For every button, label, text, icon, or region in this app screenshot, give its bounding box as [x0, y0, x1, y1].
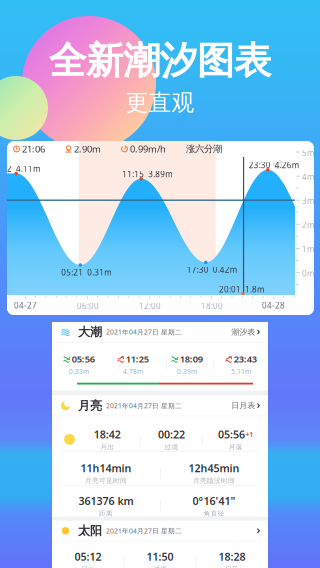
staticText: 角直径: [203, 509, 224, 518]
staticText: 04-28: [262, 300, 285, 311]
staticText: 0m: [302, 268, 314, 279]
staticText: 18:00: [201, 300, 223, 311]
staticText: 月亮可见时间: [85, 477, 127, 485]
staticText: 0.00: [297, 300, 314, 311]
staticText: 20:01 1.8m: [219, 284, 264, 295]
staticText: 12:00: [139, 300, 161, 311]
staticText: 过境: [164, 443, 178, 451]
staticText: 日出: [81, 565, 95, 568]
button[interactable]: 大潮: [52, 322, 268, 342]
staticText: 361376 km: [78, 494, 133, 508]
staticText: 过境: [153, 565, 167, 568]
staticText: 5m: [302, 147, 314, 158]
staticText: 距离: [99, 509, 113, 518]
staticText: 1m: [302, 244, 314, 254]
staticText: 17:30 0.42m: [187, 264, 237, 275]
staticText: 0°16'41": [192, 494, 235, 508]
staticText: 太阳: [70, 523, 102, 538]
staticText: 2021年04月27日 星期二: [102, 401, 182, 410]
staticText: 04-27: [14, 300, 37, 311]
staticText: 05:21 0.31m: [61, 267, 111, 278]
staticText: 更直观: [125, 89, 194, 117]
staticText: 23:30 4.26m: [249, 160, 299, 170]
staticText: 2m: [302, 220, 314, 230]
staticText: 3m: [302, 196, 314, 206]
staticText: 涨六分潮: [186, 143, 222, 155]
staticText: 11:15 3.89m: [122, 169, 172, 179]
staticText: 0.99m/h: [128, 143, 166, 155]
staticText: 05:56: [72, 353, 95, 365]
staticText: 0.33m: [69, 367, 89, 376]
staticText: 12h45min: [188, 461, 239, 475]
staticText: 06:00: [77, 300, 99, 311]
staticText: 4.78m: [123, 367, 143, 376]
staticText: +1: [246, 430, 254, 439]
staticText: 月出: [100, 443, 114, 451]
staticText: 日月表: [231, 401, 255, 411]
staticText: 11:50: [146, 549, 173, 564]
staticText: 潮汐表: [231, 327, 255, 337]
staticText: 2 4.11m: [7, 163, 40, 174]
staticText: 5.11m: [231, 367, 251, 376]
staticText: 全新潮汐图表: [49, 38, 271, 84]
staticText: 2021年04月27日 星期二: [102, 328, 182, 336]
staticText: 05:12: [74, 549, 101, 564]
staticText: 18:09: [180, 353, 203, 365]
staticText: 2.90m: [72, 143, 101, 155]
staticText: 月亮隐没时间: [193, 477, 235, 485]
staticText: 21:06: [20, 143, 45, 155]
staticText: 11h14min: [80, 461, 131, 475]
staticText: 11:25: [126, 353, 149, 365]
staticText: 日落: [225, 565, 239, 568]
staticText: 23:43: [234, 353, 257, 365]
staticText: 18:28: [218, 549, 245, 564]
staticText: 0.39m: [177, 367, 197, 376]
staticText: 2021年04月27日 星期二: [102, 526, 182, 535]
staticText: 05:56: [218, 427, 245, 442]
staticText: 18:42: [94, 427, 121, 442]
staticText: 月落: [229, 443, 243, 451]
staticText: 4m: [302, 172, 314, 182]
staticText: 月亮: [70, 398, 102, 413]
staticText: 大潮: [70, 325, 102, 339]
button[interactable]: 太阳: [52, 521, 268, 541]
staticText: 00:22: [158, 427, 185, 442]
button[interactable]: 月亮: [52, 396, 268, 416]
